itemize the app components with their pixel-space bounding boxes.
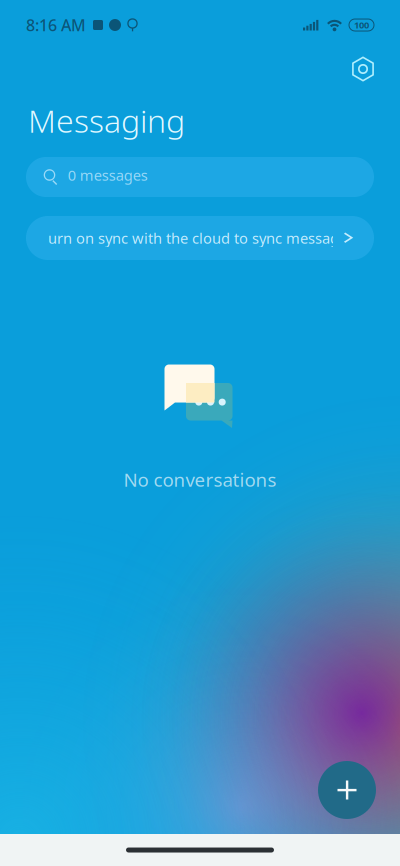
button[interactable]: urn on sync with the cloud to sync messa…	[26, 216, 374, 260]
staticText: 8:16 AM	[26, 14, 86, 36]
staticText: 0 messages	[68, 165, 148, 185]
staticText: Messaging	[28, 99, 185, 141]
button[interactable]: 0 messages	[26, 157, 374, 197]
staticText: 100	[354, 19, 369, 31]
button[interactable]: New conversation	[318, 761, 376, 819]
staticText: No conversations	[123, 467, 276, 492]
button[interactable]: Settings	[341, 47, 385, 91]
staticText: urn on sync with the cloud to sync messa…	[48, 228, 339, 248]
